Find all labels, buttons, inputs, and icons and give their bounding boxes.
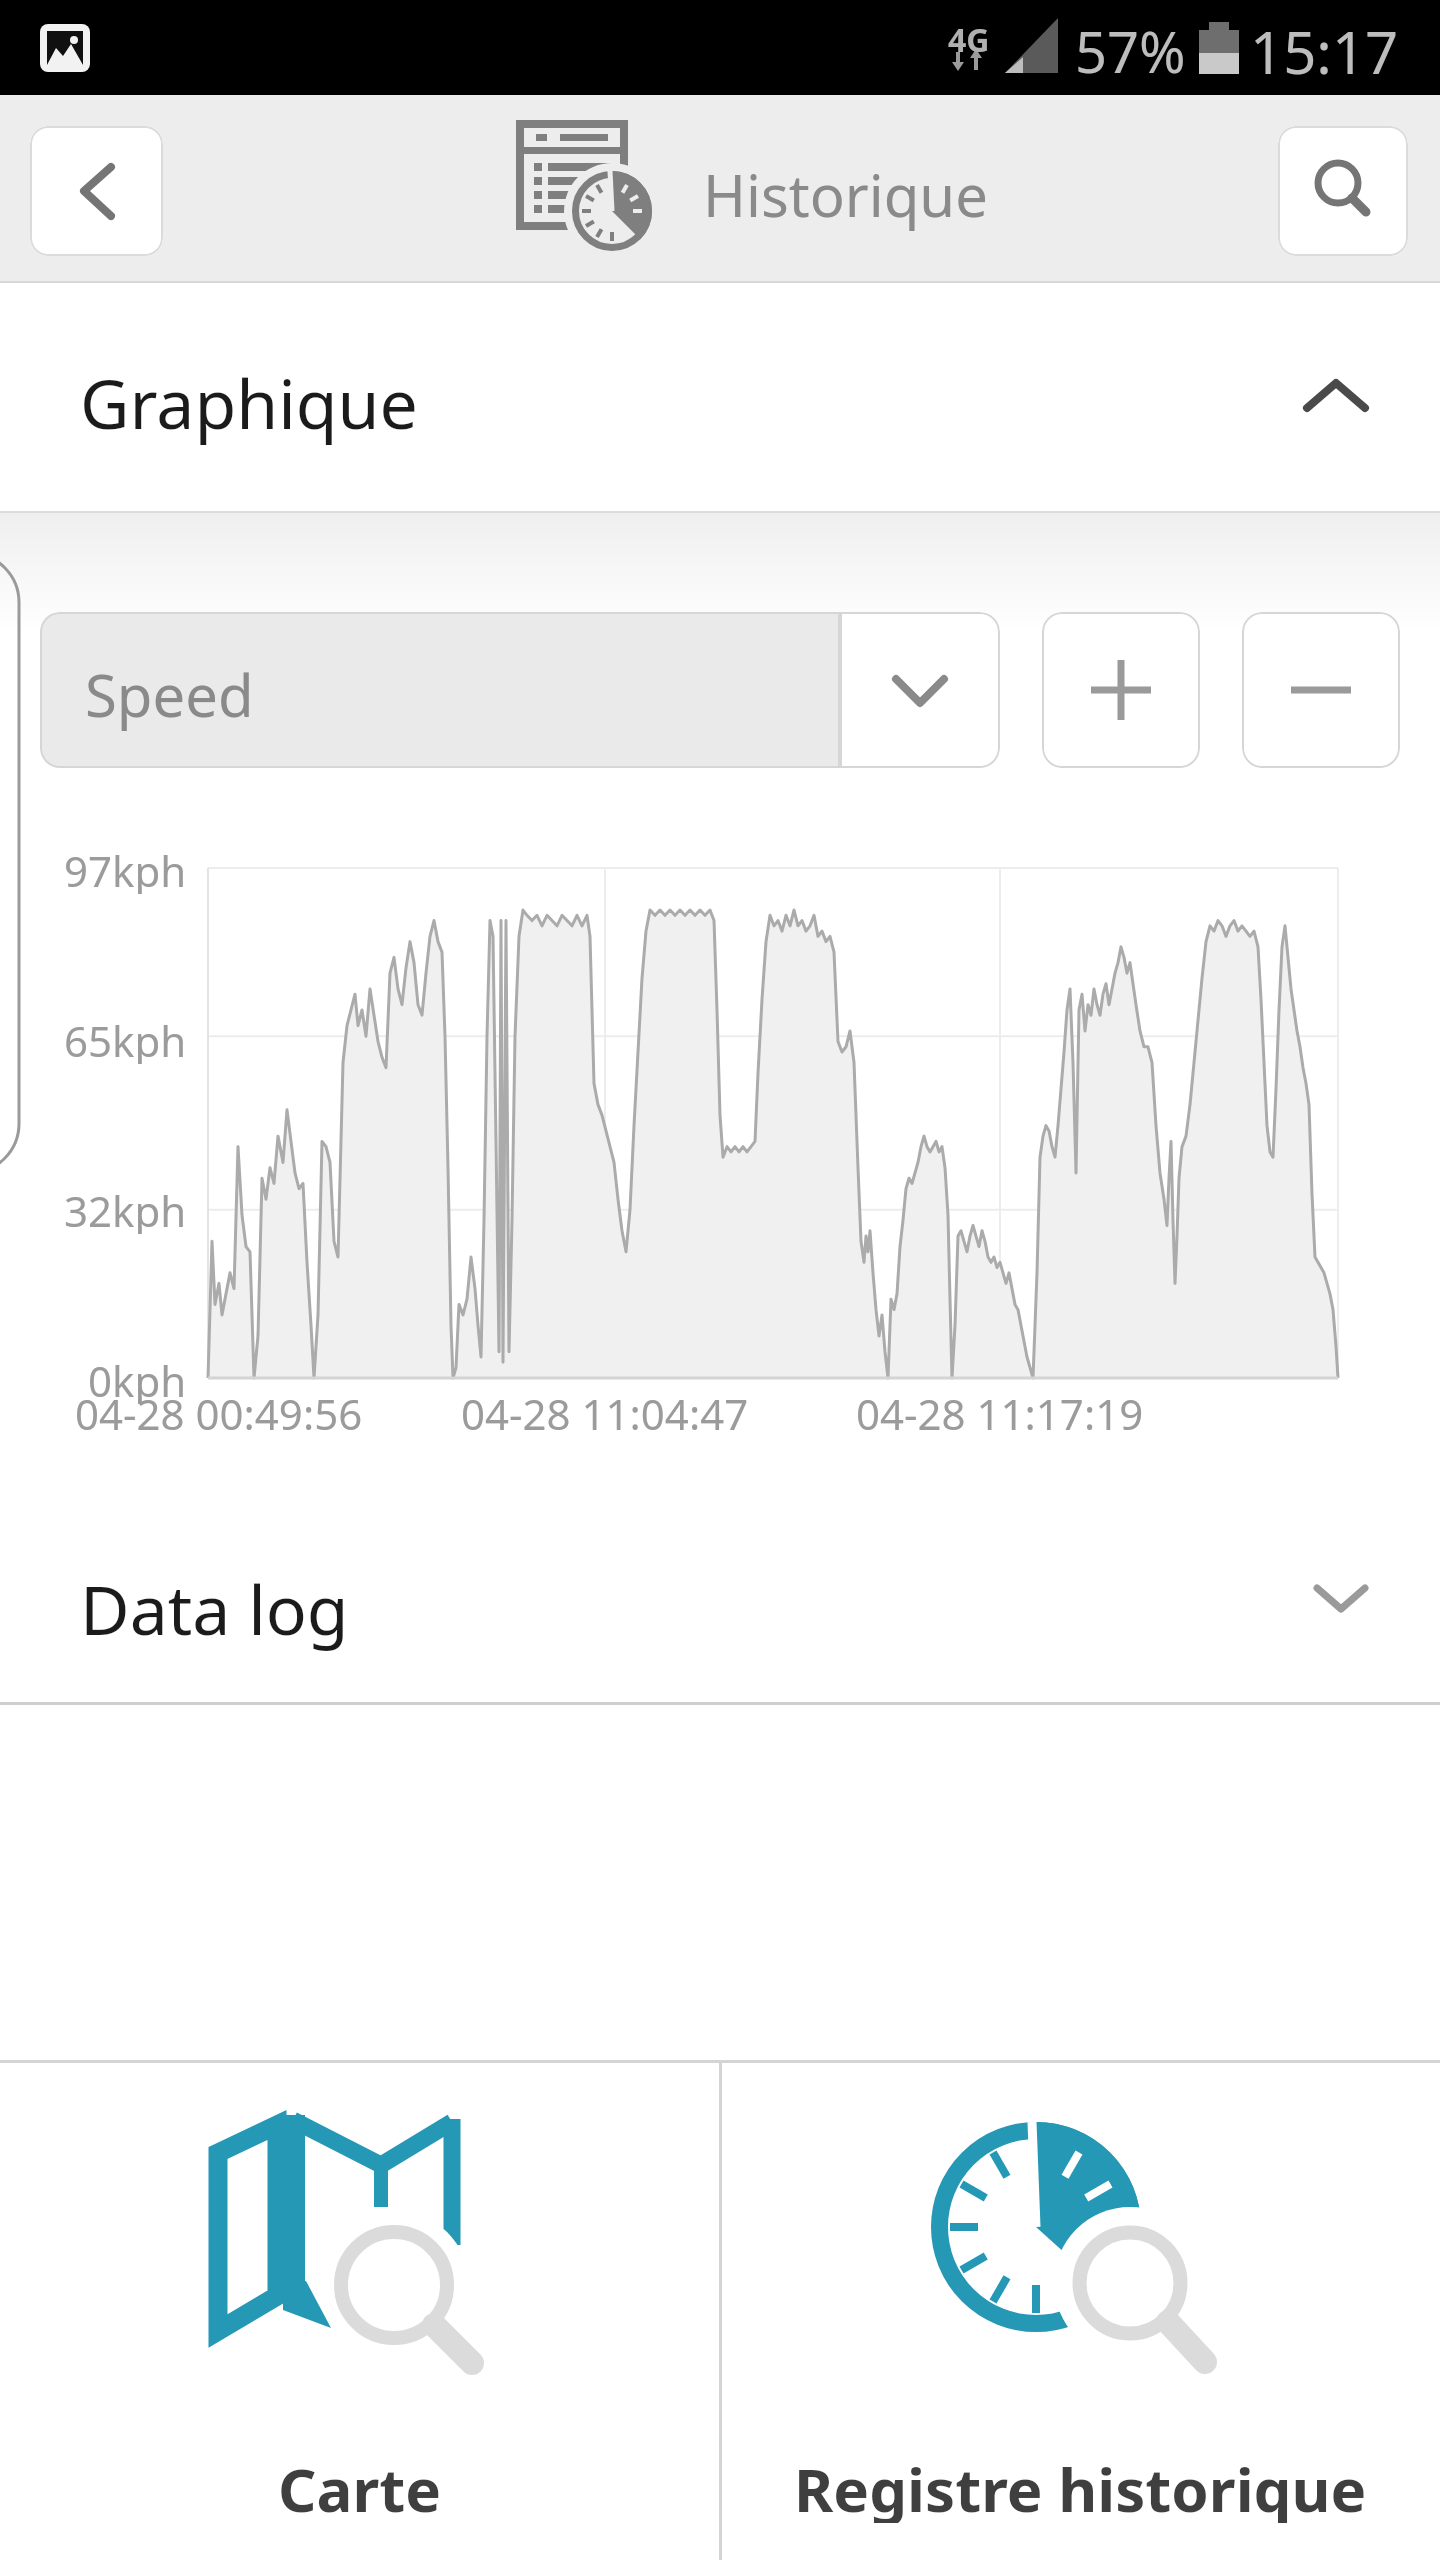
staticText: Data log xyxy=(80,1562,349,1655)
staticText: 57% xyxy=(1075,13,1186,89)
staticText: 04-28 00:49:56 xyxy=(75,1385,363,1437)
staticText: 15:17 xyxy=(1250,12,1399,91)
staticText: Graphique xyxy=(80,356,418,449)
staticText: 65kph xyxy=(64,1012,187,1064)
staticText: 0kph xyxy=(88,1352,187,1404)
button[interactable] xyxy=(0,285,1440,511)
button[interactable] xyxy=(1042,612,1200,768)
button[interactable] xyxy=(0,2063,719,2560)
button[interactable] xyxy=(40,612,840,768)
button[interactable] xyxy=(1242,612,1400,768)
staticText: Carte xyxy=(278,2448,442,2523)
button[interactable] xyxy=(840,612,1000,768)
staticText: 97kph xyxy=(64,842,187,894)
button[interactable] xyxy=(722,2063,1440,2560)
staticText: Speed xyxy=(85,655,254,734)
button[interactable] xyxy=(1278,126,1408,256)
staticText: 04-28 11:04:47 xyxy=(461,1385,749,1437)
staticText: Registre historique xyxy=(794,2448,1367,2523)
button[interactable] xyxy=(0,1495,1440,1703)
staticText: 4G xyxy=(948,18,990,62)
staticText: Historique xyxy=(703,155,988,234)
staticText: 04-28 11:17:19 xyxy=(856,1385,1144,1437)
staticText: 32kph xyxy=(64,1182,187,1234)
button[interactable] xyxy=(30,126,163,256)
